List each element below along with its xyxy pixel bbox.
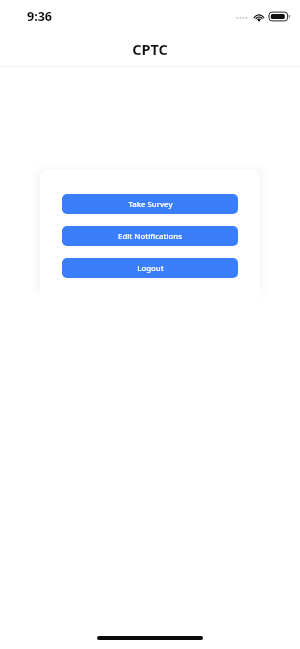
staticText: 9:36 <box>27 8 52 25</box>
button[interactable]: Take Survey <box>62 194 238 214</box>
staticText: Edit Notifications <box>118 231 182 242</box>
staticText: Logout <box>137 263 164 274</box>
staticText: Take Survey <box>128 199 173 210</box>
button[interactable]: Edit Notifications <box>62 226 238 246</box>
staticText: CPTC <box>132 39 168 59</box>
button[interactable]: Logout <box>62 258 238 278</box>
